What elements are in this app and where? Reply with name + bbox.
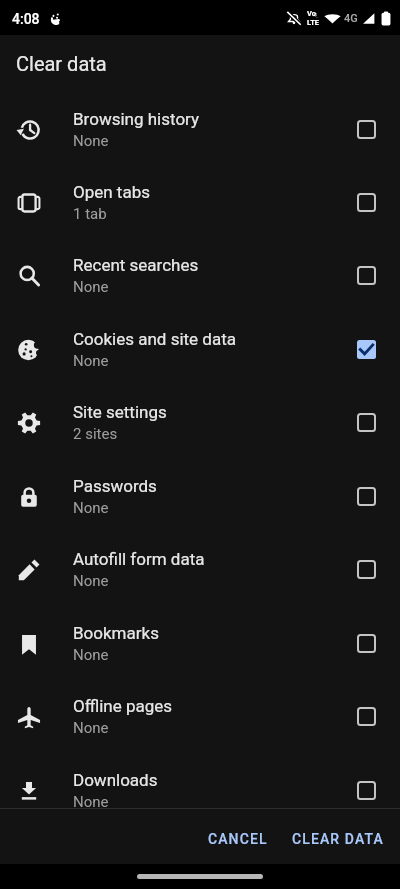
staticText: None: [73, 499, 109, 517]
staticText: None: [73, 572, 109, 590]
staticText: Downloads: [73, 770, 158, 790]
staticText: Cookies and site data: [73, 329, 236, 349]
staticText: 4G: [344, 12, 358, 25]
staticText: Open tabs: [73, 182, 150, 202]
staticText: Autofill form data: [73, 549, 205, 569]
button[interactable]: CANCEL: [198, 821, 278, 857]
staticText: None: [73, 719, 109, 737]
staticText: None: [73, 132, 109, 150]
staticText: CANCEL: [208, 831, 268, 847]
button[interactable]: Open tabs: [0, 166, 400, 239]
staticText: 4:08: [12, 11, 40, 27]
button[interactable]: Autofill form data: [0, 533, 400, 606]
button[interactable]: Site settings: [0, 386, 400, 459]
staticText: None: [73, 793, 109, 808]
staticText: Passwords: [73, 476, 157, 496]
staticText: Site settings: [73, 402, 167, 422]
button[interactable]: Recent searches: [0, 239, 400, 312]
staticText: None: [73, 352, 109, 370]
button[interactable]: Passwords: [0, 460, 400, 533]
button[interactable]: Cookies and site data: [0, 313, 400, 386]
staticText: Bookmarks: [73, 623, 159, 643]
button[interactable]: Bookmarks: [0, 607, 400, 680]
staticText: Vo: [307, 9, 316, 18]
button[interactable]: CLEAR DATA: [282, 821, 394, 857]
staticText: None: [73, 646, 109, 664]
staticText: None: [73, 278, 109, 296]
staticText: LTE: [307, 18, 320, 27]
staticText: Recent searches: [73, 255, 199, 275]
staticText: Offline pages: [73, 696, 173, 716]
button[interactable]: Browsing history: [0, 93, 400, 166]
staticText: Browsing history: [73, 109, 200, 129]
staticText: 2 sites: [73, 425, 118, 443]
staticText: CLEAR DATA: [292, 831, 384, 847]
button[interactable]: Downloads: [0, 754, 400, 808]
staticText: 1 tab: [73, 205, 107, 223]
button[interactable]: Offline pages: [0, 680, 400, 753]
staticText: Clear data: [16, 52, 107, 75]
